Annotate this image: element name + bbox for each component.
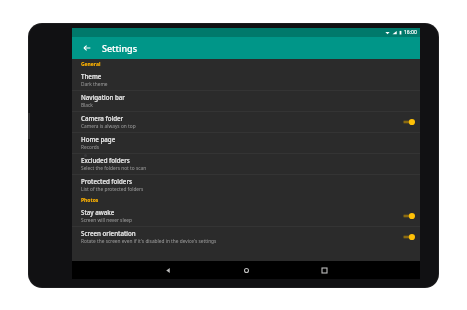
staticText: General — [81, 61, 101, 68]
button[interactable]: Stay awake toggle — [399, 210, 415, 222]
staticText: Screen will never sleep — [81, 217, 133, 224]
staticText: List of the protected folders — [81, 186, 144, 193]
staticText: Excluded folders — [81, 156, 130, 164]
staticText: Protected folders — [81, 177, 133, 185]
button[interactable]: Back — [80, 41, 94, 55]
button[interactable]: Back — [162, 264, 174, 276]
staticText: Rotate the screen even if it's disabled … — [81, 238, 217, 245]
staticText: Camera is always on top — [81, 123, 136, 130]
button[interactable]: Excluded folders — [72, 154, 420, 174]
button[interactable]: Protected folders — [72, 175, 420, 195]
button[interactable]: Screen orientation — [72, 227, 420, 247]
staticText: Theme — [81, 72, 102, 80]
staticText: Black — [81, 102, 93, 109]
staticText: Photos — [81, 197, 99, 204]
staticText: 16:00 — [404, 29, 417, 36]
staticText: Settings — [102, 42, 138, 54]
button[interactable]: Screen orientation toggle — [399, 231, 415, 243]
button[interactable]: Home — [240, 264, 252, 276]
staticText: Navigation bar — [81, 93, 125, 101]
button[interactable]: Theme — [72, 70, 420, 90]
staticText: Select the folders not to scan — [81, 165, 147, 172]
staticText: Records — [81, 144, 100, 151]
button[interactable]: Camera folder toggle — [399, 116, 415, 128]
staticText: Stay awake — [81, 208, 115, 216]
button[interactable]: Home page — [72, 133, 420, 153]
button[interactable]: Navigation bar — [72, 91, 420, 111]
button[interactable]: Camera folder — [72, 112, 420, 132]
staticText: Dark theme — [81, 81, 108, 88]
staticText: Screen orientation — [81, 229, 136, 237]
staticText: Home page — [81, 135, 116, 143]
button[interactable]: Recents — [318, 264, 330, 276]
button[interactable]: Stay awake — [72, 206, 420, 226]
staticText: Camera folder — [81, 114, 124, 122]
